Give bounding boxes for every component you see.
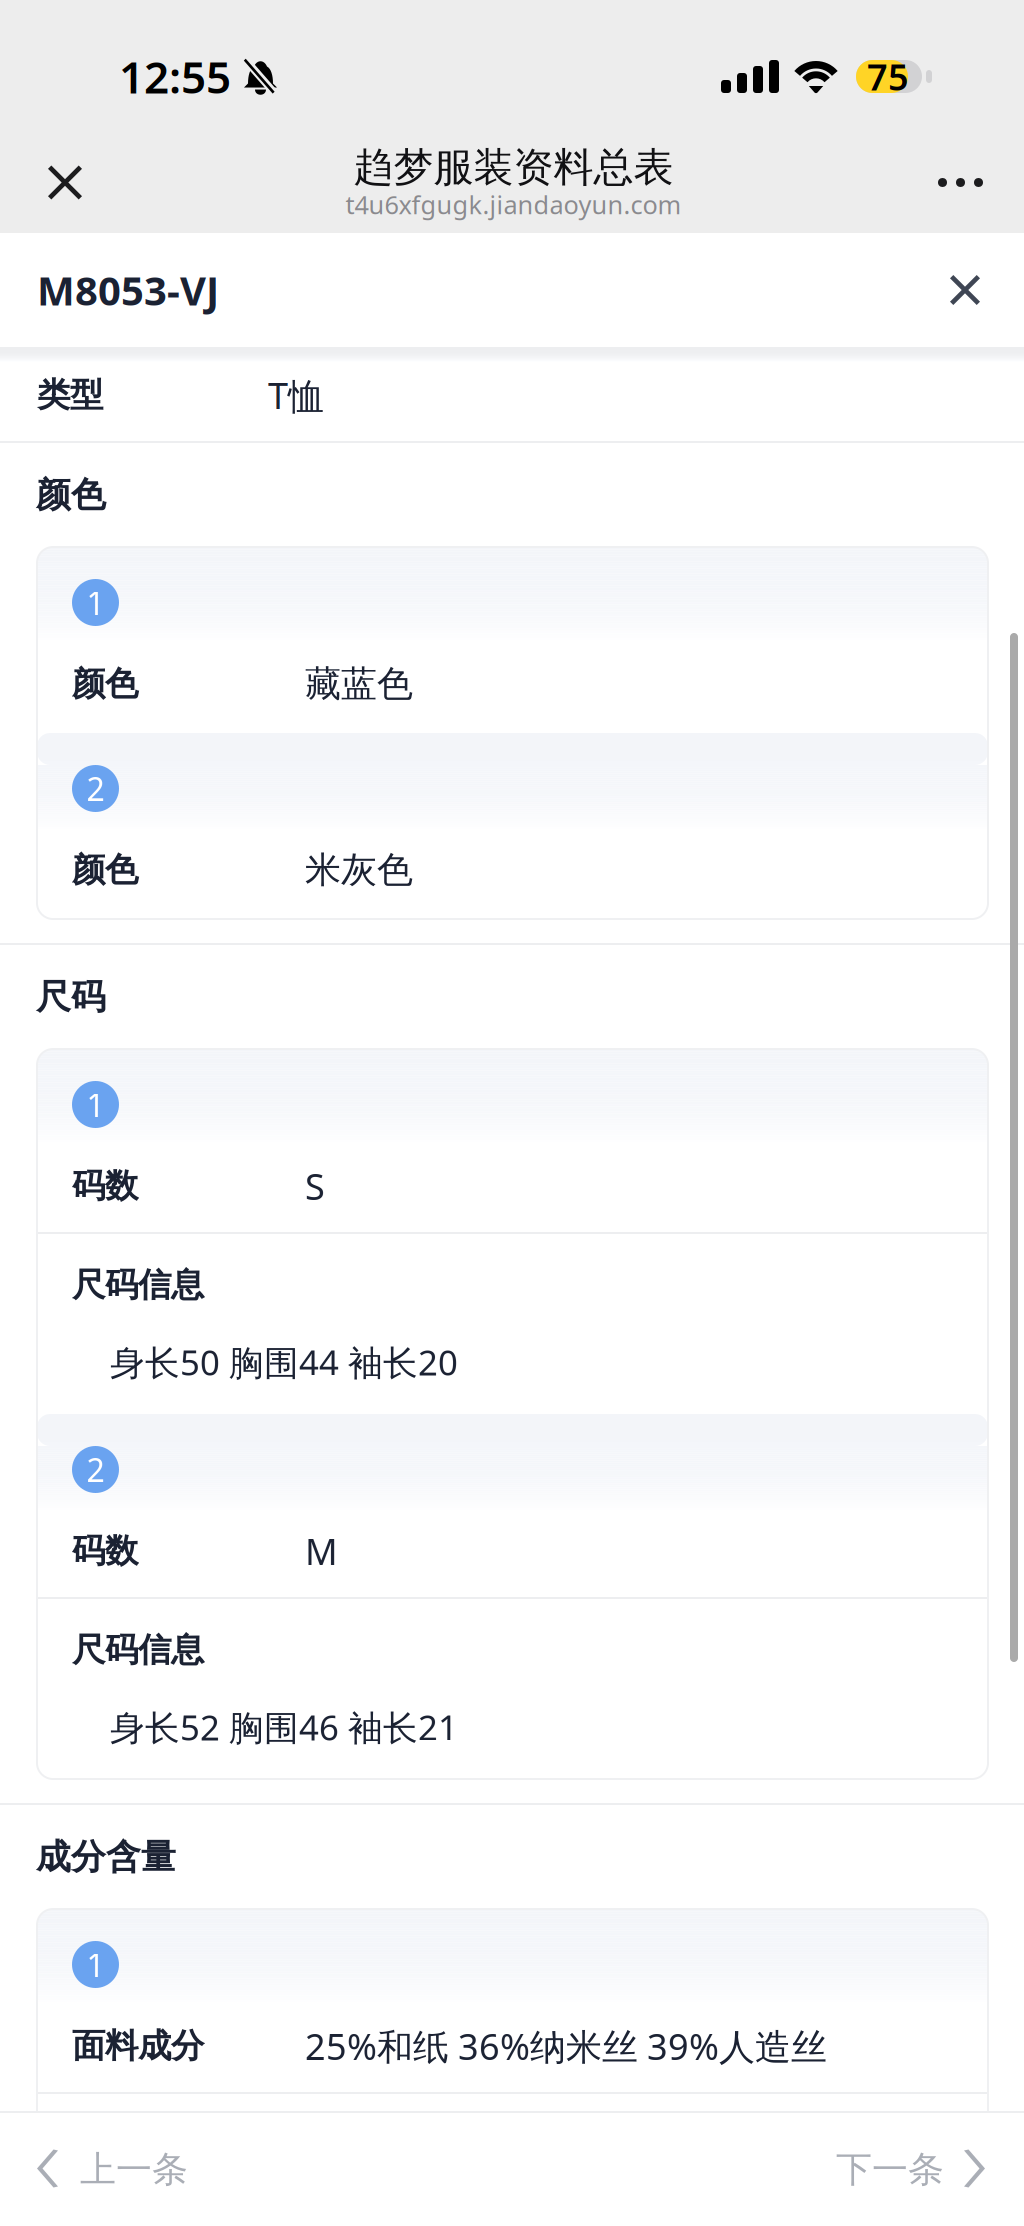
button[interactable]: Close xyxy=(0,120,130,233)
staticText: 颜色 xyxy=(72,663,138,704)
staticText: 尺码信息 xyxy=(72,1264,204,1305)
staticText: M xyxy=(305,1527,338,1575)
staticText: 75 xyxy=(867,53,909,100)
staticText xyxy=(305,2092,314,2140)
button[interactable]: 下一条 xyxy=(806,2113,1024,2226)
staticText: 2 xyxy=(86,1448,104,1491)
staticText: T恤 xyxy=(268,371,324,419)
staticText: 类型 xyxy=(37,374,103,415)
staticText: S xyxy=(305,1162,325,1210)
staticText: 下一条 xyxy=(836,2147,944,2192)
staticText: 藏蓝色 xyxy=(305,662,413,706)
staticText: 尺码 xyxy=(36,976,106,1018)
staticText: 身长50 胸围44 袖长20 xyxy=(110,1339,458,1385)
staticText: 趋梦服装资料总表 xyxy=(353,143,673,192)
button[interactable]: Close record xyxy=(924,233,1006,347)
staticText: 米灰色 xyxy=(305,848,413,892)
button[interactable]: 上一条 xyxy=(0,2113,218,2226)
staticText: 1 xyxy=(86,581,104,624)
staticText: t4u6xfgugk.jiandaoyun.com xyxy=(345,188,681,221)
staticText: 尺码信息 xyxy=(72,1629,204,1670)
staticText: 1 xyxy=(86,1083,104,1126)
staticText: M8053-VJ xyxy=(37,263,219,316)
staticText: 码数 xyxy=(72,1165,138,1206)
staticText: 码数 xyxy=(72,1530,138,1571)
staticText: 身长52 胸围46 袖长21 xyxy=(110,1704,458,1750)
staticText: 成分含量 xyxy=(36,1836,176,1878)
staticText: 2 xyxy=(86,767,104,810)
staticText: 1 xyxy=(86,1943,104,1986)
staticText: 面料成分 xyxy=(72,2025,204,2066)
staticText: 颜色 xyxy=(72,849,138,890)
staticText: 25%和纸 36%纳米丝 39%人造丝 xyxy=(305,2022,827,2070)
button[interactable]: More xyxy=(897,120,1024,233)
staticText: 12:55 xyxy=(119,47,231,106)
staticText: 颜色 xyxy=(36,474,106,516)
staticText: 上一条 xyxy=(80,2147,188,2192)
staticText xyxy=(72,2094,81,2138)
